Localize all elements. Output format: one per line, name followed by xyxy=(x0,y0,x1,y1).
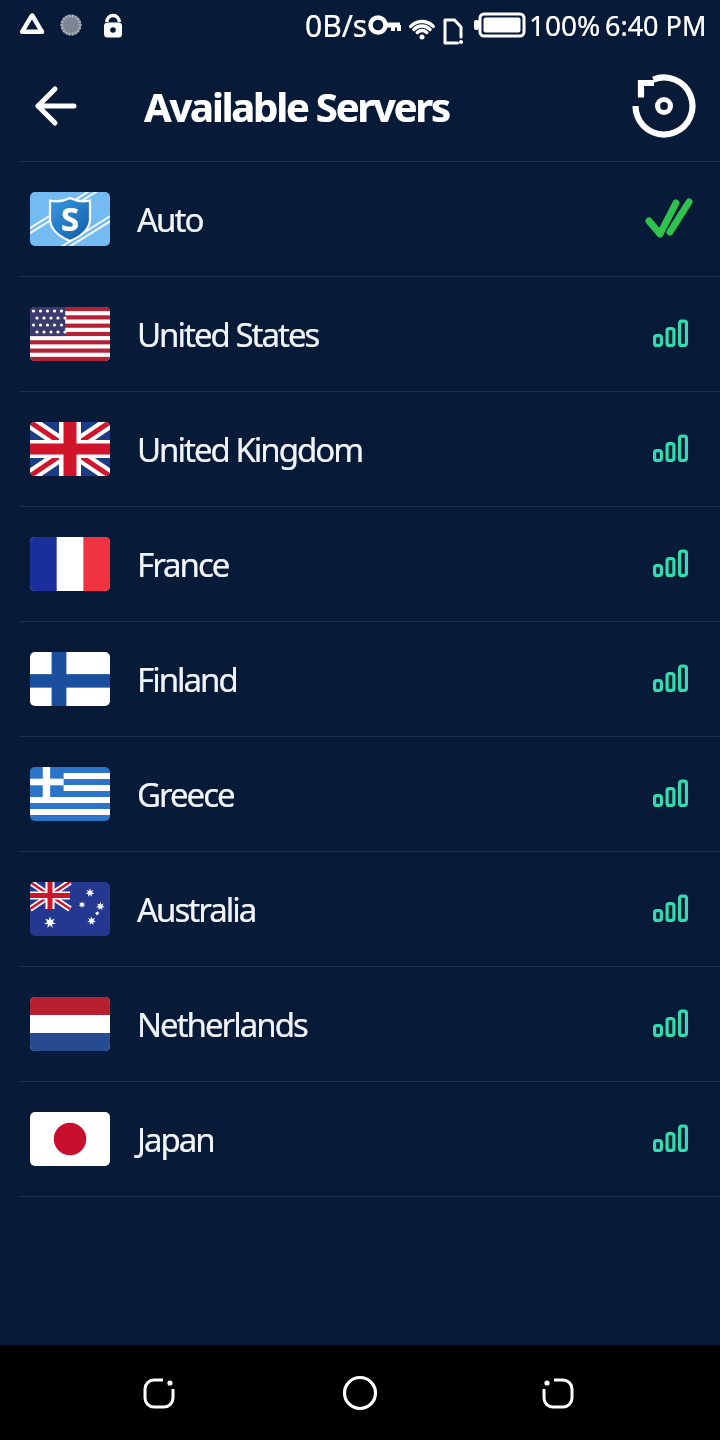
staticText: 6:40 PM xyxy=(605,7,707,44)
button[interactable]: Greece xyxy=(0,737,720,851)
staticText: Finland xyxy=(137,657,237,702)
button[interactable] xyxy=(512,1345,602,1440)
staticText: 100% xyxy=(529,6,601,44)
button[interactable]: Netherlands xyxy=(0,967,720,1081)
button[interactable]: S xyxy=(0,162,720,276)
button[interactable]: Japan xyxy=(0,1082,720,1196)
button[interactable] xyxy=(115,1345,205,1440)
staticText: 0B/s xyxy=(305,5,368,46)
staticText: Australia xyxy=(137,887,256,932)
button[interactable] xyxy=(30,79,84,133)
staticText: United Kingdom xyxy=(137,427,363,472)
button[interactable]: Australia xyxy=(0,852,720,966)
staticText: Greece xyxy=(137,772,234,817)
button[interactable] xyxy=(626,68,702,144)
button[interactable]: Finland xyxy=(0,622,720,736)
staticText: Available Servers xyxy=(144,79,449,133)
button[interactable]: United Kingdom xyxy=(0,392,720,506)
staticText: Auto xyxy=(137,197,203,242)
button[interactable]: United States xyxy=(0,277,720,391)
button[interactable]: France xyxy=(0,507,720,621)
staticText: France xyxy=(137,542,229,587)
staticText: S xyxy=(61,196,80,241)
button[interactable] xyxy=(315,1345,405,1440)
staticText: Japan xyxy=(137,1117,214,1162)
staticText: Netherlands xyxy=(137,1002,307,1047)
staticText: United States xyxy=(137,312,319,357)
